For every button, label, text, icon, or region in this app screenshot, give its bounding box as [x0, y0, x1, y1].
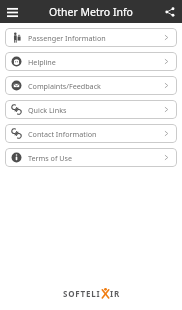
button[interactable]: Passenger Information: [5, 28, 177, 47]
staticText: Terms of Use: [28, 153, 163, 163]
staticText: SOFTELI: [63, 288, 101, 299]
button[interactable]: Terms of Use: [5, 148, 177, 167]
button[interactable]: Contact Information: [5, 124, 177, 143]
staticText: Quick Links: [28, 105, 163, 115]
button[interactable]: Share: [161, 3, 179, 21]
button[interactable]: Complaints/Feedback: [5, 76, 177, 95]
staticText: Complaints/Feedback: [28, 81, 163, 91]
button[interactable]: Quick Links: [5, 100, 177, 119]
button[interactable]: Helpline: [5, 52, 177, 71]
button[interactable]: Open navigation menu: [2, 2, 22, 22]
staticText: Helpline: [28, 57, 163, 67]
staticText: Passenger Information: [28, 33, 163, 43]
staticText: Other Metro Info: [49, 5, 133, 19]
staticText: IR: [110, 288, 120, 299]
staticText: Contact Information: [28, 129, 163, 139]
